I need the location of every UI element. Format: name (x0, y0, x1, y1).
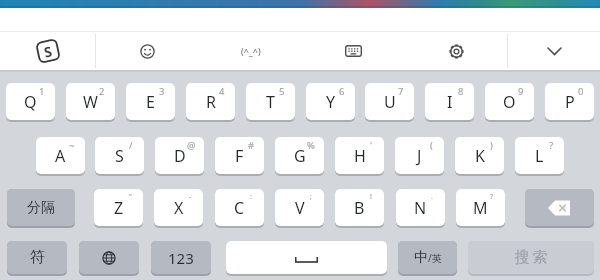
staticText: 7 (398, 85, 404, 97)
staticText: K (475, 145, 485, 167)
button[interactable]: H (335, 137, 384, 174)
staticText: Z (114, 197, 124, 219)
staticText: ) (490, 139, 493, 151)
staticText: 8 (458, 85, 464, 97)
button[interactable]: G (275, 137, 324, 174)
staticText: @ (187, 139, 196, 151)
button[interactable] (525, 189, 594, 226)
staticText: ; (310, 192, 312, 202)
staticText: ~ (69, 139, 75, 151)
staticText: / (129, 139, 133, 151)
staticText: (^_^) (241, 45, 261, 57)
button[interactable] (226, 241, 387, 274)
staticText: /英 (428, 251, 442, 265)
button[interactable]: O (485, 83, 534, 120)
button[interactable]: (^_^) (199, 32, 302, 70)
button[interactable] (79, 241, 139, 274)
staticText: ? (549, 139, 554, 151)
button[interactable]: F (215, 137, 264, 174)
button[interactable]: 分隔 (7, 189, 75, 226)
button[interactable]: J (395, 137, 444, 174)
staticText: - (189, 192, 192, 202)
staticText: F (235, 145, 244, 167)
staticText: R (206, 91, 216, 113)
staticText: I (447, 91, 453, 113)
staticText: 9 (518, 85, 524, 97)
staticText: M (473, 197, 488, 219)
staticText: . (431, 192, 433, 202)
staticText: : (250, 192, 252, 202)
staticText: Y (326, 91, 336, 113)
staticText: ? (490, 192, 494, 202)
button[interactable]: D (155, 137, 204, 174)
staticText: A (55, 145, 66, 167)
button[interactable]: A (36, 137, 85, 174)
button[interactable] (302, 32, 405, 70)
button[interactable] (96, 32, 199, 70)
staticText: ' (370, 139, 373, 151)
staticText: C (234, 197, 245, 219)
button[interactable]: I (425, 83, 474, 120)
staticText: O (503, 91, 516, 113)
button[interactable]: E (126, 83, 175, 120)
staticText: 123 (168, 248, 194, 268)
staticText: E (146, 91, 155, 113)
staticText: 5 (279, 85, 285, 97)
staticText: 6 (339, 85, 345, 97)
button[interactable]: L (515, 137, 564, 174)
staticText: 搜索 (513, 248, 549, 267)
button[interactable]: 中 (398, 241, 457, 274)
button[interactable]: V (275, 189, 324, 226)
staticText: ( (430, 139, 433, 151)
button[interactable]: R (186, 83, 235, 120)
button[interactable]: U (365, 83, 414, 120)
staticText: T (266, 91, 275, 113)
staticText: U (384, 91, 396, 113)
staticText: L (535, 145, 544, 167)
staticText: ! (370, 192, 372, 202)
button[interactable]: S (95, 137, 144, 174)
staticText: 2 (99, 85, 105, 97)
staticText: W (83, 91, 98, 113)
staticText: 符 (30, 248, 45, 267)
staticText: D (174, 145, 186, 167)
staticText: 分隔 (27, 199, 55, 217)
staticText: Q (24, 91, 37, 113)
button[interactable] (405, 32, 507, 70)
button[interactable]: B (335, 189, 384, 226)
staticText: # (248, 139, 255, 151)
staticText: " (129, 192, 132, 202)
button[interactable]: T (246, 83, 295, 120)
staticText: 3 (159, 85, 165, 97)
button[interactable]: M (456, 189, 505, 226)
button[interactable]: S (0, 32, 95, 70)
button[interactable]: P (545, 83, 594, 120)
staticText: 1 (39, 85, 45, 97)
staticText: 0 (578, 85, 584, 97)
button[interactable]: N (396, 189, 445, 226)
staticText: J (417, 145, 422, 167)
staticText: B (354, 197, 365, 219)
button[interactable] (508, 32, 600, 70)
button[interactable]: C (215, 189, 264, 226)
button[interactable]: Z (94, 189, 143, 226)
button[interactable]: 搜索 (468, 241, 594, 274)
button[interactable]: Y (306, 83, 355, 120)
staticText: 4 (219, 85, 225, 97)
staticText: % (307, 139, 315, 151)
button[interactable]: W (66, 83, 115, 120)
staticText: S (115, 145, 124, 167)
staticText: N (414, 197, 427, 219)
staticText: 中 (414, 249, 428, 267)
button[interactable]: X (154, 189, 203, 226)
staticText: S (42, 41, 54, 62)
staticText: P (565, 91, 575, 113)
staticText: G (294, 145, 306, 167)
button[interactable]: 123 (151, 241, 211, 274)
staticText: X (174, 197, 184, 219)
staticText: V (295, 197, 305, 219)
button[interactable]: 符 (7, 241, 67, 274)
staticText: H (354, 145, 366, 167)
button[interactable]: K (455, 137, 504, 174)
button[interactable]: Q (6, 83, 55, 120)
